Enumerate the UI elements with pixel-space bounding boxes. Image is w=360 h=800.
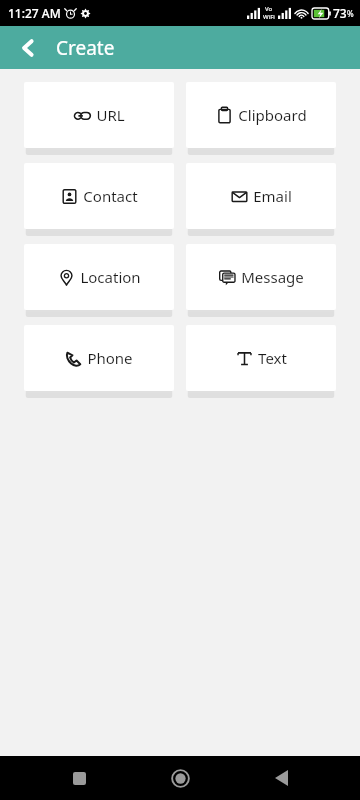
button[interactable]: Back: [259, 756, 303, 800]
staticText: Location: [80, 267, 141, 287]
staticText: Email: [253, 186, 292, 206]
staticText: %: [347, 8, 354, 19]
button[interactable]: Back: [12, 32, 44, 64]
staticText: 73: [333, 5, 347, 21]
staticText: URL: [96, 105, 125, 125]
staticText: 11:27 AM: [8, 5, 61, 21]
staticText: Vo: [265, 5, 273, 13]
button[interactable]: Contact: [24, 163, 174, 229]
button[interactable]: Clipboard: [186, 82, 336, 148]
button[interactable]: Phone: [24, 325, 174, 391]
button[interactable]: Recent apps: [57, 756, 101, 800]
staticText: Create: [56, 35, 115, 61]
staticText: WiFi: [263, 13, 275, 21]
staticText: Text: [258, 348, 287, 368]
staticText: Message: [241, 267, 304, 287]
button[interactable]: Email: [186, 163, 336, 229]
staticText: Contact: [83, 186, 138, 206]
button[interactable]: Text: [186, 325, 336, 391]
staticText: Phone: [87, 348, 133, 368]
button[interactable]: Home: [158, 756, 202, 800]
button[interactable]: URL: [24, 82, 174, 148]
button[interactable]: Message: [186, 244, 336, 310]
button[interactable]: Location: [24, 244, 174, 310]
staticText: Clipboard: [238, 105, 307, 125]
